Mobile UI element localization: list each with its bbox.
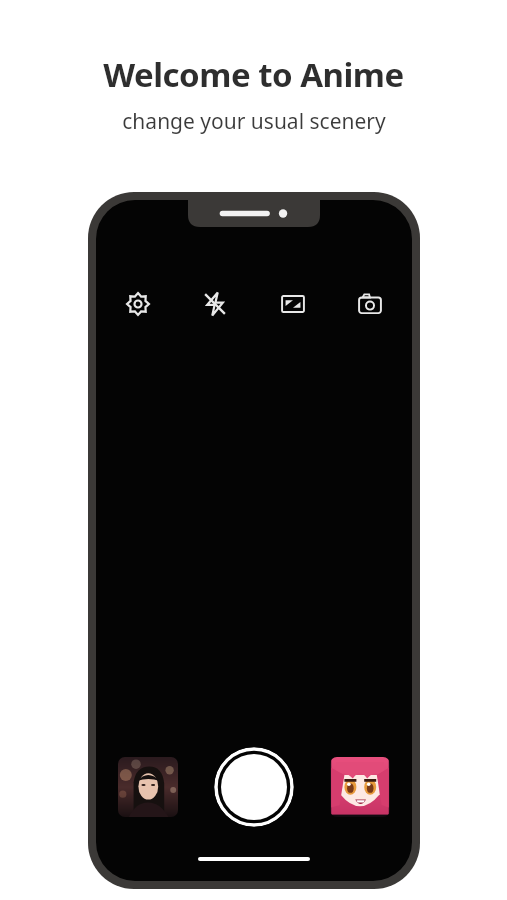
staticText: Welcome to Anime — [103, 52, 404, 97]
button[interactable]: Switch camera — [350, 284, 390, 324]
button[interactable]: Aspect ratio — [273, 284, 313, 324]
button[interactable]: Anime style — [330, 757, 390, 817]
staticText: change your usual scenery — [122, 107, 386, 136]
button[interactable]: Last photo — [118, 757, 178, 817]
button[interactable]: Settings — [118, 284, 158, 324]
button[interactable]: Flash off — [195, 284, 235, 324]
button[interactable]: Shutter — [214, 747, 294, 827]
